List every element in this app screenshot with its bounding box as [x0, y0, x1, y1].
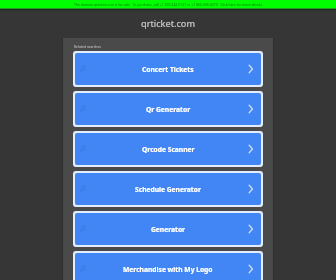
staticText: Concert Tickets [142, 65, 194, 74]
button[interactable]: Search for Merchandise with My Logo [75, 253, 261, 280]
button[interactable]: Search for Qr Generator [75, 93, 261, 125]
button[interactable] [0, 0, 336, 12]
staticText: Schedule Generator [135, 185, 201, 194]
button[interactable]: Search for Schedule Generator [75, 173, 261, 205]
staticText: Qr Generator [146, 105, 191, 114]
staticText: Related searches [74, 44, 101, 49]
staticText: Merchandise with My Logo [123, 265, 213, 274]
staticText: Generator [151, 225, 186, 234]
button[interactable]: Search for Generator [75, 213, 261, 245]
staticText: Qrcode Scanner [142, 145, 195, 154]
staticText: The domain qrticket.com is for sale. To … [74, 2, 263, 7]
button[interactable]: Search for Qrcode Scanner [75, 133, 261, 165]
staticText: qrticket.com [141, 17, 195, 30]
button[interactable]: Search for Concert Tickets [75, 53, 261, 85]
